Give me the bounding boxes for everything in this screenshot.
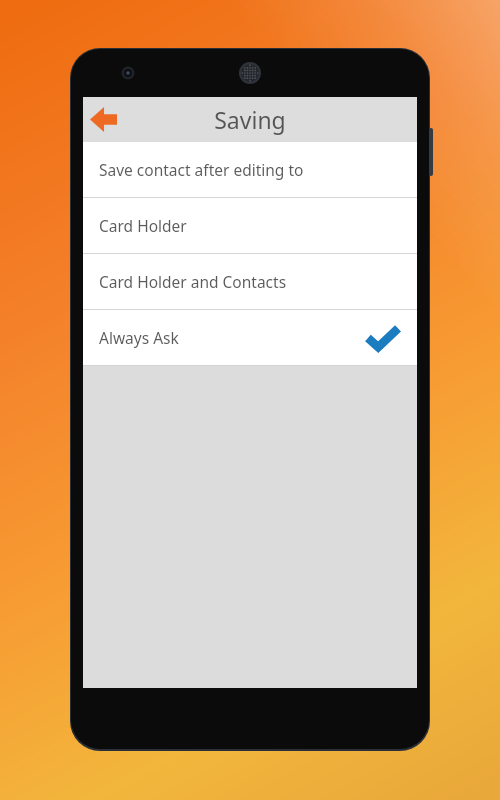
button[interactable]: Card Holder (83, 198, 417, 253)
button[interactable]: Card Holder and Contacts (83, 254, 417, 309)
staticText: Save contact after editing to (99, 159, 304, 180)
button[interactable]: Always Ask (83, 310, 417, 365)
staticText: Saving (83, 104, 417, 135)
staticText: Card Holder and Contacts (99, 271, 287, 292)
button[interactable]: Back (83, 97, 123, 142)
button[interactable]: Save contact after editing to (83, 142, 417, 197)
staticText: Always Ask (99, 327, 179, 348)
staticText: Card Holder (99, 215, 187, 236)
